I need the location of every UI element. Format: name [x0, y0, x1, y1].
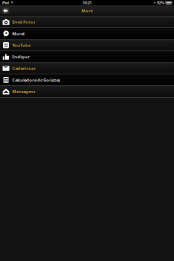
button[interactable]: Mensagens: [0, 86, 174, 97]
staticText: iPad: [2, 0, 10, 5]
staticText: Indique: [12, 54, 29, 59]
staticText: Cadastre-se: [12, 66, 35, 71]
button[interactable]: Calculadora de Gorjetas: [0, 74, 174, 86]
button[interactable]: Indique: [0, 51, 174, 63]
staticText: More: [81, 8, 92, 13]
button[interactable]: YouTube: [0, 40, 174, 51]
button[interactable]: Cadastre-se: [0, 63, 174, 74]
staticText: Envie Fotos: [12, 19, 35, 25]
staticText: 10:21: [82, 0, 91, 5]
button[interactable]: Mural: [0, 28, 174, 40]
staticText: Calculadora de Gorjetas: [12, 77, 60, 82]
staticText: Mural: [12, 31, 24, 36]
staticText: YouTube: [12, 42, 30, 48]
staticText: 92%: [157, 0, 165, 5]
button[interactable]: Back: [2, 8, 9, 14]
staticText: Mensagens: [12, 89, 35, 94]
button[interactable]: Envie Fotos: [0, 16, 174, 28]
